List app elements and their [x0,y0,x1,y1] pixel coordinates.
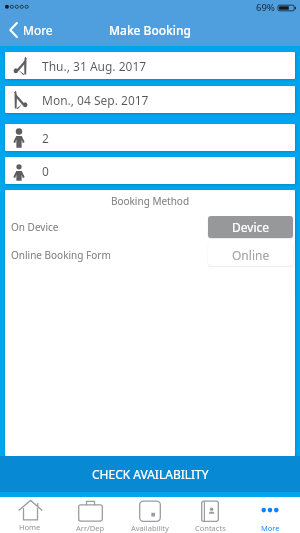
staticText: Home [19,522,41,532]
button[interactable]: Children [5,157,295,184]
button[interactable]: CHECK AVAILABILITY [0,456,300,492]
staticText: Booking Method [5,194,295,208]
staticText: Availability [131,523,169,533]
staticText: Online Booking Form [11,248,111,262]
button[interactable]: Arr/Dep [60,497,120,533]
staticText: Mon., 04 Sep. 2017 [42,92,149,108]
button[interactable]: Availability [120,497,180,533]
staticText: Thu., 31 Aug. 2017 [42,58,147,74]
button[interactable]: Home [0,497,60,533]
staticText: Make Booking [109,22,192,38]
staticText: 0 [42,163,49,179]
button[interactable]: More [240,497,300,533]
button[interactable]: Online [208,244,293,266]
button[interactable]: Departure date [5,52,295,79]
staticText: Arr/Dep [76,523,105,533]
staticText: On Device [11,220,59,234]
button[interactable]: More [0,14,61,46]
staticText: More [23,22,53,38]
staticText: 2 [42,130,49,146]
staticText: Contacts [195,523,226,533]
staticText: More [261,523,280,533]
button[interactable]: Contacts [180,497,240,533]
staticText: Device [232,219,270,235]
staticText: 69% [256,1,275,14]
staticText: CHECK AVAILABILITY [92,466,209,482]
button[interactable]: Adults [5,124,295,151]
button[interactable]: Return date [5,86,295,113]
button[interactable]: Device [208,216,293,238]
staticText: Online [232,247,270,263]
